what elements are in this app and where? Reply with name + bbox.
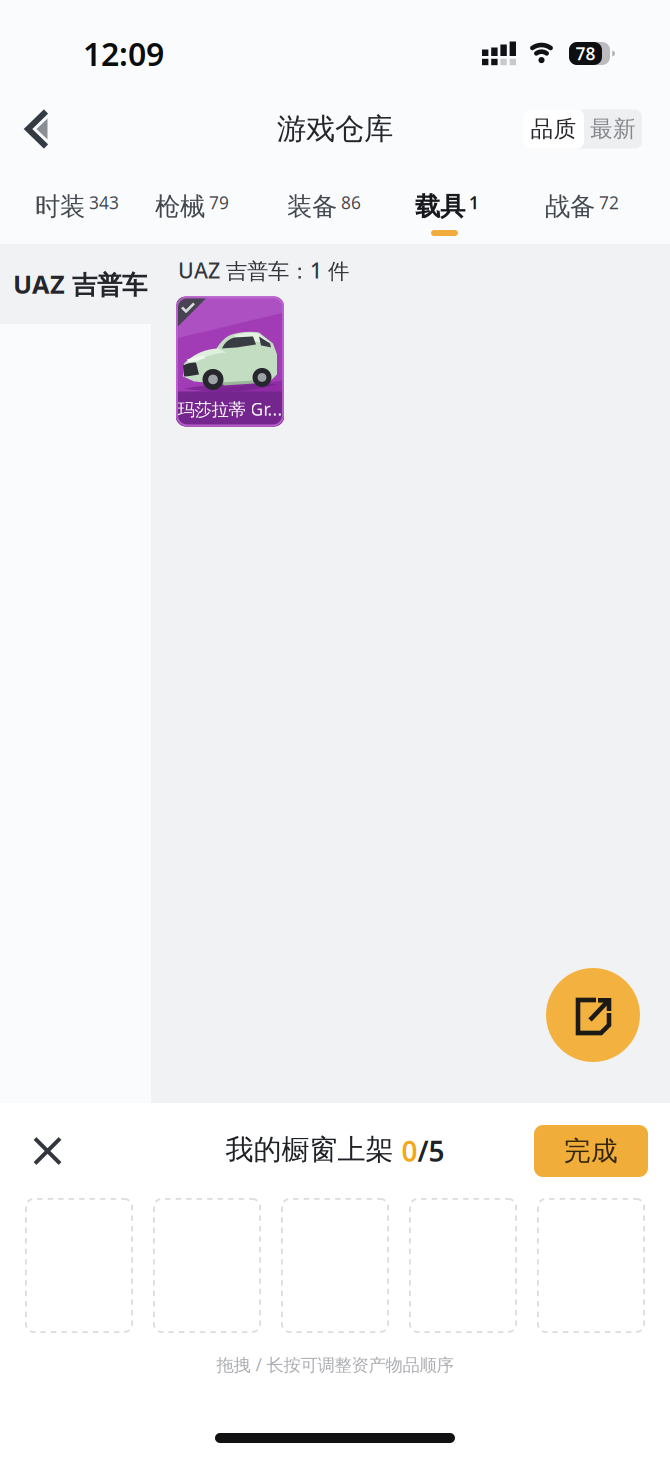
button[interactable]: 完成 — [534, 1125, 648, 1177]
button[interactable]: 枪械 — [155, 191, 229, 222]
button[interactable]: 上架分享 — [546, 968, 640, 1062]
button[interactable]: 最新 — [584, 109, 642, 148]
staticText: 时装 — [35, 191, 85, 222]
staticText: 载具 — [415, 191, 465, 222]
staticText: 79 — [209, 191, 229, 214]
staticText: 78 — [575, 42, 595, 65]
staticText: 0 — [401, 1132, 417, 1170]
staticText: 最新 — [590, 115, 636, 143]
button[interactable]: 关闭 — [33, 1136, 62, 1165]
staticText: 72 — [599, 191, 619, 214]
staticText: /5 — [417, 1132, 444, 1170]
button[interactable]: 战备 — [545, 191, 619, 222]
staticText: 拖拽 / 长按可调整资产物品顺序 — [216, 1353, 453, 1376]
staticText: 玛莎拉蒂 Gr... — [177, 397, 282, 420]
staticText: 品质 — [530, 115, 576, 143]
button[interactable]: 载具 — [415, 191, 479, 222]
staticText: 战备 — [545, 191, 595, 222]
button[interactable]: UAZ 吉普车 — [0, 244, 151, 324]
staticText: 装备 — [287, 191, 337, 222]
button[interactable]: 返回 — [26, 110, 48, 148]
staticText: 12:09 — [83, 32, 164, 75]
button[interactable]: 品质 — [523, 109, 584, 148]
button[interactable]: 玛莎拉蒂 Gr... — [176, 296, 284, 426]
button[interactable]: 装备 — [287, 191, 361, 222]
staticText: 343 — [89, 191, 119, 214]
staticText: UAZ 吉普车 — [13, 267, 147, 301]
staticText: UAZ 吉普车：1 件 — [178, 256, 349, 284]
staticText: 游戏仓库 — [277, 111, 393, 147]
staticText: 1 — [469, 191, 479, 214]
staticText: 我的橱窗上架 — [225, 1132, 401, 1167]
button[interactable]: 时装 — [35, 191, 119, 222]
staticText: 枪械 — [155, 191, 205, 222]
staticText: 完成 — [564, 1135, 618, 1167]
staticText: 86 — [341, 191, 361, 214]
